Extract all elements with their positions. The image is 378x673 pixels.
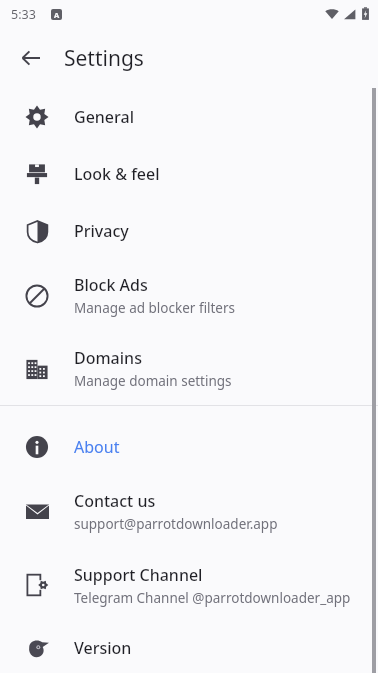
staticText: About — [74, 436, 120, 458]
button[interactable]: Privacy — [0, 202, 378, 259]
button[interactable]: Version — [0, 622, 378, 673]
button[interactable]: Block Ads — [0, 259, 378, 332]
staticText: Manage domain settings — [74, 372, 232, 390]
staticText: Contact us — [74, 490, 156, 512]
staticText: Support Channel — [74, 564, 203, 586]
staticText: Privacy — [74, 220, 129, 242]
staticText: Settings — [64, 44, 144, 73]
staticText: Look & feel — [74, 163, 160, 185]
button[interactable]: General — [0, 88, 378, 145]
staticText: General — [74, 106, 134, 128]
staticText: A — [54, 10, 60, 20]
button[interactable]: Look & feel — [0, 145, 378, 202]
staticText: Manage ad blocker filters — [74, 299, 236, 317]
staticText: 5:33 — [11, 6, 36, 23]
staticText: Block Ads — [74, 274, 148, 296]
staticText: Domains — [74, 347, 142, 369]
button[interactable]: About — [0, 420, 378, 474]
button[interactable]: Domains — [0, 332, 378, 405]
staticText: Telegram Channel @parrotdownloader_app — [74, 589, 351, 607]
button[interactable]: Back — [12, 39, 50, 77]
staticText: Version — [74, 637, 132, 659]
button[interactable]: Support Channel — [0, 548, 378, 622]
staticText: support@parrotdownloader.app — [74, 515, 278, 533]
button[interactable]: Contact us — [0, 474, 378, 548]
